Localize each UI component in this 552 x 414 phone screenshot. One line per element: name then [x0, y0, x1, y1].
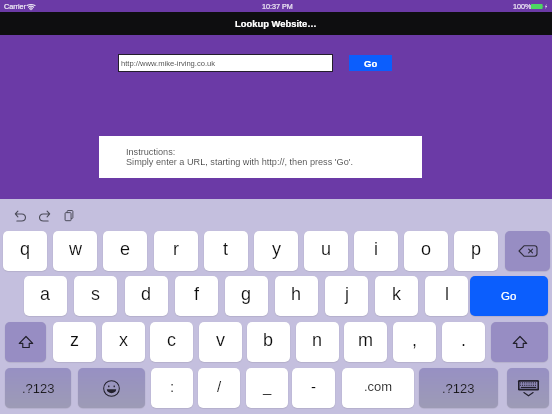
- staticText: http://www.mike-irving.co.uk: [121, 59, 216, 67]
- button[interactable]: g: [225, 276, 268, 316]
- button[interactable]: http://www.mike-irving.co.uk: [118, 54, 333, 72]
- button[interactable]: Paste: [61, 207, 78, 224]
- staticText: ,: [412, 330, 418, 350]
- button[interactable]: v: [199, 322, 242, 362]
- staticText: k: [392, 284, 401, 304]
- button[interactable]: b: [247, 322, 290, 362]
- staticText: m: [358, 330, 373, 350]
- button[interactable]: o: [404, 231, 448, 271]
- button[interactable]: i: [354, 231, 398, 271]
- button[interactable]: c: [150, 322, 193, 362]
- staticText: Instructions:: [126, 147, 176, 157]
- staticText: y: [272, 239, 281, 259]
- button[interactable]: f: [175, 276, 218, 316]
- button[interactable]: x: [102, 322, 145, 362]
- staticText: e: [120, 239, 131, 259]
- button[interactable]: u: [304, 231, 348, 271]
- button[interactable]: k: [375, 276, 418, 316]
- staticText: o: [421, 239, 432, 259]
- staticText: .?123: [442, 381, 475, 396]
- staticText: q: [20, 239, 31, 259]
- staticText: /: [217, 378, 222, 395]
- button[interactable]: t: [204, 231, 248, 271]
- staticText: b: [263, 330, 274, 350]
- button[interactable]: -: [292, 368, 335, 408]
- staticText: .: [461, 330, 467, 350]
- staticText: Carrier: [4, 2, 26, 10]
- button[interactable]: /: [198, 368, 240, 408]
- staticText: 100%: [513, 2, 532, 10]
- button[interactable]: Emoji: [78, 368, 145, 408]
- staticText: l: [445, 284, 449, 304]
- staticText: s: [91, 284, 100, 304]
- button[interactable]: p: [454, 231, 498, 271]
- button[interactable]: z: [53, 322, 96, 362]
- button[interactable]: .?123: [5, 368, 71, 408]
- button[interactable]: q: [3, 231, 47, 271]
- staticText: 10:37 PM: [262, 2, 293, 10]
- button[interactable]: Backspace: [505, 231, 550, 271]
- staticText: w: [69, 239, 82, 259]
- button[interactable]: s: [74, 276, 117, 316]
- button[interactable]: a: [24, 276, 67, 316]
- staticText: j: [345, 284, 349, 304]
- staticText: u: [321, 239, 332, 259]
- button[interactable]: :: [151, 368, 193, 408]
- button[interactable]: e: [103, 231, 147, 271]
- button[interactable]: Go: [349, 55, 392, 71]
- button[interactable]: .com: [342, 368, 414, 408]
- staticText: z: [70, 330, 79, 350]
- button[interactable]: Shift: [491, 322, 548, 362]
- button[interactable]: _: [246, 368, 288, 408]
- button[interactable]: r: [154, 231, 198, 271]
- button[interactable]: ,: [393, 322, 436, 362]
- button[interactable]: Shift: [5, 322, 46, 362]
- button[interactable]: Go: [470, 276, 548, 316]
- button[interactable]: y: [254, 231, 298, 271]
- button[interactable]: d: [125, 276, 168, 316]
- staticText: Go: [364, 58, 378, 69]
- button[interactable]: n: [296, 322, 339, 362]
- staticText: p: [471, 239, 482, 259]
- staticText: t: [223, 239, 229, 259]
- staticText: Lookup Website…: [235, 18, 317, 29]
- staticText: Simply enter a URL, starting with http:/…: [126, 157, 354, 167]
- staticText: .com: [364, 379, 393, 394]
- staticText: Go: [501, 290, 517, 303]
- button[interactable]: w: [53, 231, 97, 271]
- staticText: -: [311, 378, 316, 395]
- staticText: x: [119, 330, 128, 350]
- staticText: f: [194, 284, 200, 304]
- staticText: :: [170, 378, 175, 395]
- staticText: _: [263, 378, 272, 395]
- staticText: v: [216, 330, 225, 350]
- button[interactable]: Hide keyboard: [507, 368, 549, 408]
- button[interactable]: j: [325, 276, 368, 316]
- button[interactable]: h: [275, 276, 318, 316]
- staticText: d: [141, 284, 152, 304]
- staticText: i: [374, 239, 378, 259]
- staticText: n: [312, 330, 323, 350]
- button[interactable]: .: [442, 322, 485, 362]
- button[interactable]: l: [425, 276, 468, 316]
- button[interactable]: Redo: [36, 207, 53, 224]
- staticText: g: [241, 284, 252, 304]
- button[interactable]: m: [344, 322, 387, 362]
- staticText: a: [40, 284, 51, 304]
- button[interactable]: Undo: [12, 207, 29, 224]
- button[interactable]: .?123: [419, 368, 498, 408]
- staticText: .?123: [22, 381, 55, 396]
- staticText: h: [291, 284, 302, 304]
- staticText: r: [173, 239, 179, 259]
- staticText: c: [167, 330, 176, 350]
